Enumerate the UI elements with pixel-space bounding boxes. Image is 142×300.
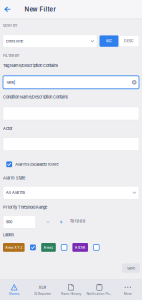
staticText: EventTime [6, 39, 23, 43]
staticText: Alarms [9, 292, 20, 296]
staticText: DESC [124, 39, 134, 43]
button[interactable]: Area2 [36, 243, 56, 252]
staticText: Alarm State [3, 176, 25, 180]
button[interactable]: Area XYZ selected [25, 244, 36, 250]
staticText: To 1000 [70, 219, 86, 223]
staticText: All Alarms [6, 190, 25, 195]
button[interactable]: ASC [99, 35, 118, 47]
button[interactable]: Decrease priority [44, 216, 53, 227]
staticText: FILTER BY [3, 54, 20, 58]
staticText: Save [127, 266, 135, 270]
button[interactable]: AIEVA [67, 243, 88, 252]
button[interactable]: Area XYZ [3, 243, 25, 252]
button[interactable]: Notification Po… [85, 280, 114, 300]
staticText: Notification Po… [86, 292, 112, 296]
staticText: AIEVA [75, 245, 86, 250]
button[interactable]: All Alarms [3, 186, 139, 199]
staticText: Actor [3, 126, 13, 131]
staticText: Tank [6, 80, 14, 85]
staticText: + [59, 218, 63, 225]
staticText: 900 [6, 219, 12, 224]
button[interactable]: EventTime [3, 35, 97, 48]
staticText: New Filter [24, 6, 55, 13]
staticText: Priority Threshold Range [3, 205, 47, 210]
staticText: Alarms Escalated To Me [15, 162, 58, 167]
staticText: – [47, 218, 50, 225]
button[interactable]: XLR [28, 280, 57, 300]
staticText: XLR [39, 285, 47, 290]
staticText: Condition Name/Description Contains [3, 94, 68, 99]
staticText: Area2 [43, 245, 53, 250]
button[interactable]: Alarms [0, 280, 28, 300]
button[interactable]: AIEVA unselected [88, 244, 99, 250]
button[interactable]: Alarms Escalated To Me [6, 161, 58, 168]
button[interactable]: DESC [119, 35, 139, 47]
staticText: XLReporter [34, 292, 51, 296]
button[interactable]: Area2 unselected [56, 244, 67, 250]
button[interactable]: More [114, 280, 142, 300]
button[interactable]: Back [1, 0, 14, 19]
staticText: Labels [3, 232, 14, 237]
staticText: ASC [105, 39, 112, 43]
button[interactable]: Alarm History [57, 280, 85, 300]
button[interactable]: Increase priority [57, 216, 66, 227]
staticText: SORT BY [3, 23, 18, 28]
staticText: Area XYZ [5, 245, 22, 250]
staticText: More [124, 292, 132, 296]
button[interactable]: Save [122, 263, 140, 273]
staticText: Alarm History [60, 292, 81, 296]
staticText: Tag Name/Description Contains [3, 63, 58, 68]
